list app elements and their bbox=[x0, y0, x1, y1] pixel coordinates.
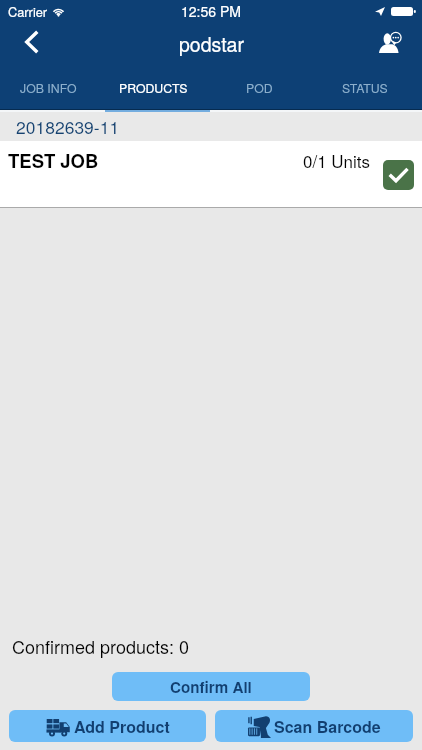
staticText: podstar bbox=[179, 30, 244, 58]
staticText: 12:56 PM bbox=[181, 1, 241, 21]
button[interactable]: STATUS bbox=[316, 66, 422, 109]
button[interactable]: Scan Barcode bbox=[215, 710, 413, 742]
staticText: JOB INFO bbox=[20, 79, 77, 97]
button[interactable]: Confirm All bbox=[112, 672, 310, 701]
staticText: 20182639-11 bbox=[16, 114, 120, 139]
staticText: Add Product bbox=[74, 715, 170, 738]
button[interactable]: PRODUCTS bbox=[105, 66, 210, 109]
staticText: TEST JOB bbox=[8, 147, 99, 173]
staticText: Confirm All bbox=[170, 676, 252, 698]
button[interactable]: Contact support bbox=[374, 22, 422, 66]
button[interactable]: Confirm product bbox=[383, 160, 414, 190]
staticText: Confirmed products: 0 bbox=[12, 633, 189, 659]
button[interactable]: POD bbox=[210, 66, 316, 109]
button[interactable]: TEST JOB bbox=[0, 141, 422, 207]
button[interactable]: JOB INFO bbox=[0, 66, 105, 109]
staticText: Carrier bbox=[8, 2, 48, 20]
staticText: 0/1 Units bbox=[303, 148, 370, 172]
staticText: Scan Barcode bbox=[274, 715, 381, 738]
staticText: PRODUCTS bbox=[119, 79, 188, 97]
staticText: STATUS bbox=[342, 79, 388, 97]
button[interactable]: Add Product bbox=[9, 710, 206, 742]
staticText: POD bbox=[246, 79, 273, 97]
button[interactable]: Back bbox=[0, 22, 56, 66]
